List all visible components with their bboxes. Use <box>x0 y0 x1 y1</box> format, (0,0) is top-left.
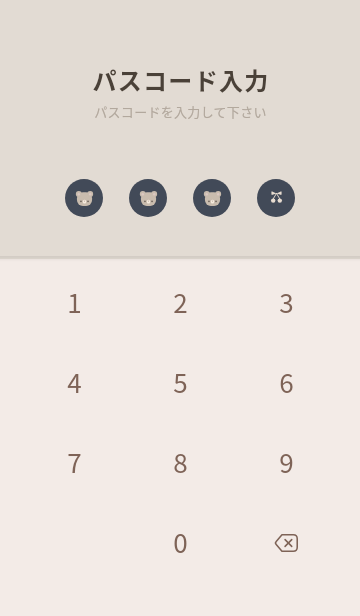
button[interactable]: 4 <box>34 349 114 415</box>
staticText: 9 <box>279 443 294 481</box>
staticText: 2 <box>173 283 188 321</box>
button[interactable]: 3 <box>246 269 326 335</box>
staticText: 4 <box>67 363 82 401</box>
button[interactable]: 6 <box>246 349 326 415</box>
button[interactable]: 9 <box>246 429 326 495</box>
staticText: 8 <box>173 443 188 481</box>
button[interactable]: 5 <box>140 349 220 415</box>
staticText: 0 <box>173 523 188 561</box>
staticText: 7 <box>67 443 82 481</box>
staticText: パスコードを入力して下さい <box>94 102 267 121</box>
button[interactable]: 2 <box>140 269 220 335</box>
staticText: 1 <box>67 283 82 321</box>
staticText: 3 <box>279 283 294 321</box>
button[interactable]: 1 <box>34 269 114 335</box>
button[interactable]: Backspace <box>246 509 326 575</box>
staticText: パスコード入力 <box>92 62 270 97</box>
button[interactable]: 7 <box>34 429 114 495</box>
staticText: 6 <box>279 363 294 401</box>
staticText: 5 <box>173 363 188 401</box>
button[interactable]: 8 <box>140 429 220 495</box>
button[interactable]: 0 <box>140 509 220 575</box>
